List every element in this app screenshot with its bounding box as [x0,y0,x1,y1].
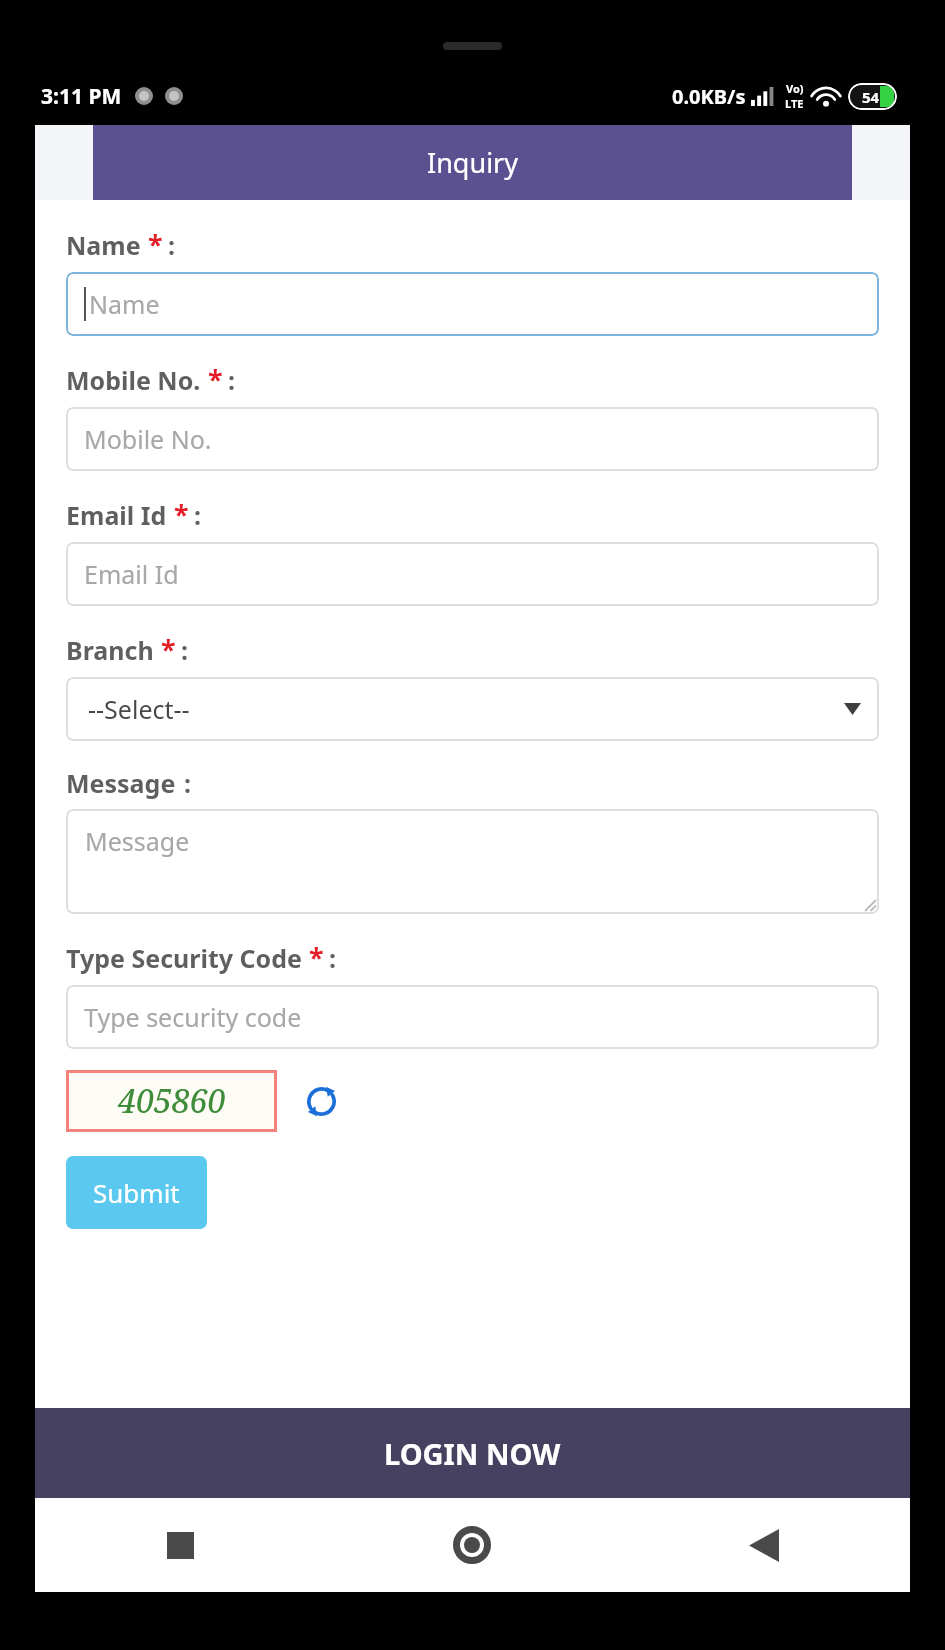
staticText: 0.0KB/s [672,83,746,110]
staticText: Branch [66,633,154,667]
button[interactable]: Back [618,1498,910,1592]
staticText: 405860 [118,1079,226,1123]
button[interactable]: Home [326,1498,618,1592]
staticText: Mobile No. [66,363,201,397]
staticText: : [168,228,176,262]
staticText: Email Id [84,557,179,591]
staticText: LOGIN NOW [384,1434,561,1473]
staticText: Type Security Code [66,941,302,975]
staticText: * [161,631,176,668]
staticText: Name [66,228,141,262]
button[interactable]: Type security code [66,985,879,1049]
staticText: Message [85,824,190,858]
staticText: --Select-- [88,692,190,726]
button[interactable]: Recent apps [35,1498,326,1592]
staticText: : [228,363,236,397]
staticText: : [329,941,337,975]
staticText: LTE [785,96,804,111]
button[interactable]: Mobile No. [66,407,879,471]
staticText: Vo) [786,81,804,96]
staticText: : [181,633,189,667]
staticText: Message [66,766,176,800]
staticText: * [174,496,189,533]
button[interactable]: Inquiry [93,125,852,200]
staticText: Submit [93,1175,180,1210]
button[interactable]: Branch selector [66,677,879,741]
staticText: Name [89,287,160,321]
button[interactable]: Message [66,809,879,914]
staticText: Type security code [84,1000,302,1034]
staticText: 54 [862,87,880,107]
staticText: 3:11 PM [41,82,122,111]
staticText: Inquiry [427,144,519,181]
staticText: Mobile No. [84,422,212,456]
button[interactable]: LOGIN NOW [35,1408,910,1498]
staticText: * [309,939,324,976]
staticText: : [194,498,202,532]
staticText: * [208,361,223,398]
button[interactable]: Submit [66,1156,207,1229]
staticText: : [184,766,192,800]
staticText: Email Id [66,498,167,532]
button[interactable]: Name [66,272,879,336]
staticText: * [148,226,163,263]
button[interactable]: Email Id [66,542,879,606]
button[interactable]: Refresh security code [299,1079,343,1123]
